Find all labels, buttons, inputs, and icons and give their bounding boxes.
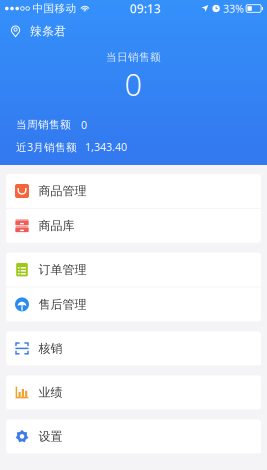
button[interactable]: 订单管理: [6, 253, 261, 287]
staticText: 当周销售额: [16, 118, 71, 131]
staticText: 订单管理: [38, 262, 86, 277]
staticText: 商品管理: [38, 184, 86, 198]
staticText: 09:13: [130, 0, 161, 16]
staticText: 当日销售额: [106, 51, 161, 64]
button[interactable]: 商品管理: [6, 174, 261, 208]
staticText: 0: [124, 64, 142, 104]
staticText: 33%: [223, 1, 244, 16]
button[interactable]: 商品库: [6, 209, 261, 243]
button[interactable]: 核销: [6, 331, 261, 365]
staticText: 1,343.40: [85, 140, 127, 154]
staticText: 0: [81, 118, 87, 132]
staticText: 商品库: [38, 218, 74, 233]
staticText: 核销: [38, 341, 62, 356]
staticText: 辣条君: [30, 24, 66, 39]
staticText: 近3月销售额: [16, 140, 77, 154]
staticText: 设置: [38, 429, 62, 444]
staticText: 售后管理: [38, 297, 86, 312]
button[interactable]: 业绩: [6, 375, 261, 409]
staticText: 中国移动: [32, 2, 76, 15]
button[interactable]: 售后管理: [6, 287, 261, 321]
button[interactable]: 设置: [6, 419, 261, 453]
staticText: 业绩: [38, 385, 62, 400]
